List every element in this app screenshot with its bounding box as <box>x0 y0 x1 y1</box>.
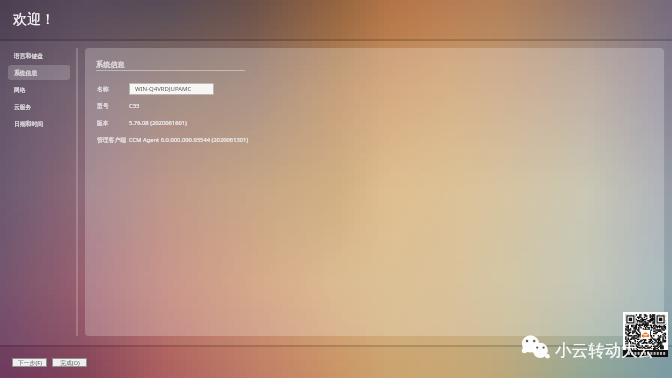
button[interactable]: 云服务 <box>8 99 70 114</box>
staticText: 下一步(F) <box>18 359 42 367</box>
staticText: 欢迎！ <box>13 11 55 29</box>
button[interactable]: 语言和键盘 <box>8 48 70 63</box>
button[interactable]: WIN-Q4VRDJUPAMC <box>129 83 214 95</box>
staticText: C33 <box>129 102 140 110</box>
staticText: 系统信息 <box>14 69 38 76</box>
staticText: WIN-Q4VRDJUPAMC <box>135 85 192 93</box>
staticText: 版本 <box>97 119 109 126</box>
staticText: 云服务 <box>14 103 32 110</box>
button[interactable]: 系统信息 <box>8 65 70 80</box>
staticText: 型号 <box>97 102 109 109</box>
staticText: 完成(O) <box>60 359 80 367</box>
staticText: 网络 <box>14 86 26 93</box>
staticText: 小云转动大云 <box>555 340 654 361</box>
button[interactable]: 网络 <box>8 82 70 97</box>
button[interactable]: 日期和时间 <box>8 116 70 131</box>
staticText: CCM Agent 6.0.000.000.93544 (2020061301) <box>129 136 249 144</box>
staticText: 语言和键盘 <box>14 52 43 59</box>
button[interactable]: 完成(O) <box>52 358 87 367</box>
button[interactable]: 下一步(F) <box>12 358 47 367</box>
staticText: 日期和时间 <box>14 120 43 127</box>
staticText: 系统信息 <box>96 60 125 69</box>
staticText: 管理客户端 <box>97 136 126 143</box>
staticText: 5.76.08 (2020061601) <box>129 119 187 127</box>
staticText: 名称 <box>97 85 109 92</box>
